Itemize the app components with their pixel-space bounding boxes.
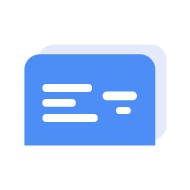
button[interactable]: App logo — [0, 0, 190, 190]
